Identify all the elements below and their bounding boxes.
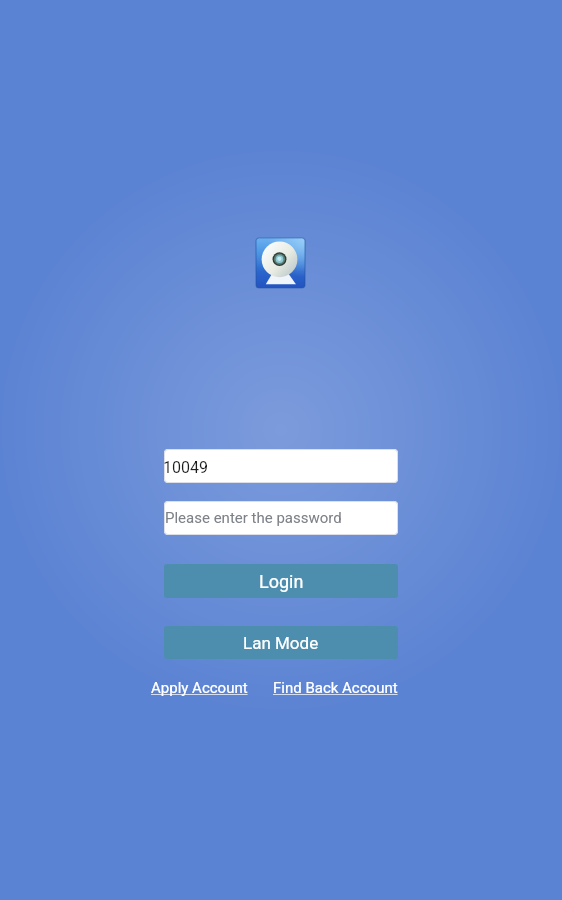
staticText: 10049 <box>164 458 208 477</box>
staticText: Login <box>259 571 304 592</box>
staticText: Lan Mode <box>243 633 319 653</box>
staticText: Apply Account <box>151 679 248 697</box>
button[interactable]: Lan Mode <box>164 626 398 659</box>
button[interactable]: Please enter the password <box>164 501 398 535</box>
button[interactable]: Apply Account <box>151 679 248 697</box>
staticText: Please enter the password <box>165 509 342 527</box>
staticText: Find Back Account <box>273 679 398 697</box>
button[interactable]: Find Back Account <box>273 679 398 697</box>
button[interactable]: Login <box>164 564 398 598</box>
button[interactable]: 10049 <box>164 449 398 483</box>
other: App logo <box>256 238 305 288</box>
